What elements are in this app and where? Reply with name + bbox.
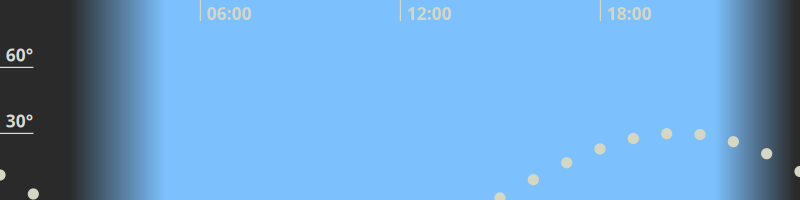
staticText: 18:00 [607, 2, 652, 25]
staticText: 06:00 [207, 2, 252, 25]
staticText: 60° [6, 43, 33, 66]
staticText: 30° [6, 109, 33, 132]
staticText: 12:00 [407, 2, 452, 25]
